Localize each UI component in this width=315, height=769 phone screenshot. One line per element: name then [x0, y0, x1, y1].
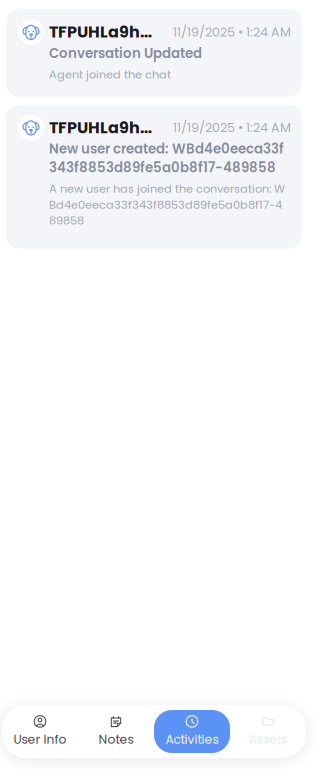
staticText: 11/19/2025 • 1:24 AM — [173, 23, 291, 41]
staticText: TFPUHLa9h… — [49, 21, 152, 43]
button[interactable]: Notes — [78, 710, 154, 753]
staticText: Conversation Updated — [49, 44, 202, 63]
button[interactable]: Activities — [154, 710, 230, 753]
button[interactable]: TFPUHLa9h… — [6, 104, 302, 248]
staticText: TFPUHLa9h… — [49, 116, 152, 139]
button[interactable]: User Info — [2, 710, 78, 753]
staticText: User Info — [13, 731, 66, 748]
button[interactable]: TFPUHLa9h… — [6, 9, 302, 96]
staticText: Agent joined the chat — [49, 67, 171, 83]
staticText: Assets — [249, 731, 287, 748]
staticText: Activities — [165, 731, 218, 748]
staticText: 11/19/2025 • 1:24 AM — [173, 119, 291, 136]
staticText: New user created: WBd4e0eeca33f 343f8853… — [49, 139, 284, 177]
button[interactable]: Assets — [230, 710, 306, 753]
staticText: A new user has joined the conversation: … — [49, 181, 285, 228]
staticText: Notes — [98, 731, 133, 748]
